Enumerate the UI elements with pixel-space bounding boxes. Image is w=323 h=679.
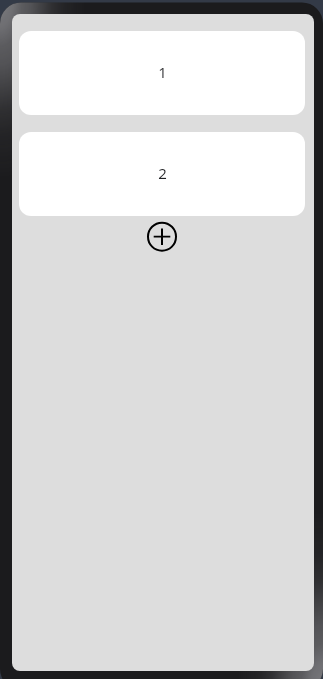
button[interactable]: 1 — [19, 31, 305, 115]
button[interactable]: Add — [146, 221, 178, 253]
staticText: 2 — [158, 163, 167, 183]
staticText: 1 — [158, 62, 167, 82]
button[interactable]: 2 — [19, 132, 305, 216]
